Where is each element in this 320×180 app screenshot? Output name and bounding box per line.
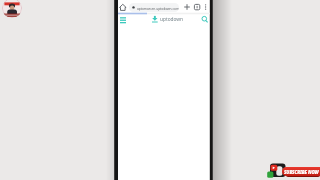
staticText: SUBSCRIBE NOW (284, 169, 319, 175)
button[interactable]: SUBSCRIBE NOW (282, 167, 320, 176)
button[interactable]: uptodown (160, 16, 184, 23)
button[interactable] (202, 1, 210, 13)
button[interactable] (182, 1, 192, 13)
button[interactable] (192, 1, 202, 13)
button[interactable] (118, 1, 129, 13)
button[interactable] (199, 14, 210, 25)
button[interactable] (117, 15, 128, 25)
staticText: aptoman.en.uptodown.com (137, 6, 179, 10)
button[interactable]: aptoman.en.uptodown.com (129, 3, 179, 12)
button[interactable] (2, 0, 22, 18)
